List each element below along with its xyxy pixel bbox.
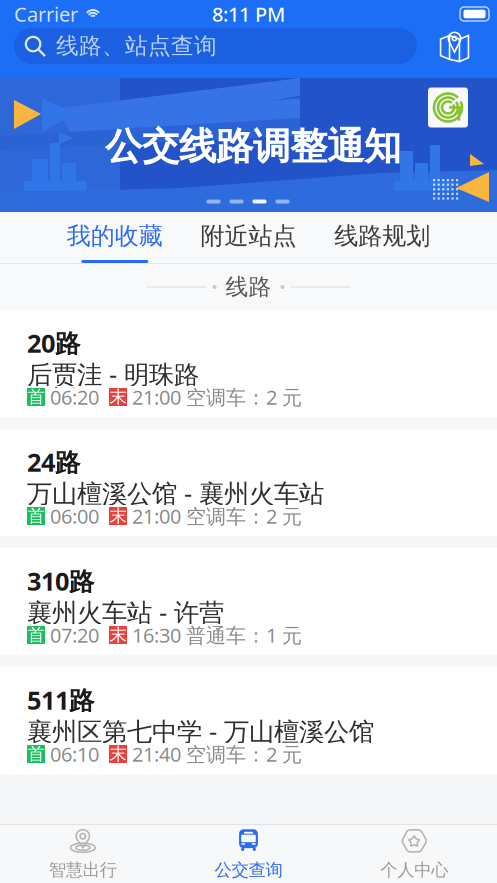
staticText: 首 xyxy=(27,505,44,527)
staticText: 末 xyxy=(109,743,126,765)
button[interactable]: 线路规划 xyxy=(315,212,449,263)
staticText: 公交查询 xyxy=(214,859,282,881)
staticText: 智慧出行 xyxy=(49,859,117,881)
button[interactable]: 511路 xyxy=(0,667,497,774)
staticText: 06:20 xyxy=(45,384,109,410)
staticText: 襄州区第七中学 - 万山檀溪公馆 xyxy=(27,714,374,748)
button[interactable]: 公交线路调整通知 xyxy=(0,78,497,212)
staticText: 24路 xyxy=(27,445,80,479)
staticText: 首 xyxy=(27,624,44,646)
staticText: 个人中心 xyxy=(380,859,448,881)
staticText: 末 xyxy=(109,386,126,408)
button[interactable]: 个人中心 xyxy=(331,825,497,883)
button[interactable]: 我的收藏 xyxy=(48,212,182,263)
button[interactable]: 附近站点 xyxy=(182,212,315,263)
staticText: 首 xyxy=(27,743,44,765)
staticText: 末 xyxy=(109,624,126,646)
button[interactable]: 智慧出行 xyxy=(0,825,166,883)
staticText: 8:11 PM xyxy=(212,1,285,27)
staticText: 末 xyxy=(109,505,126,527)
staticText: 07:20 xyxy=(45,622,109,648)
staticText: 附近站点 xyxy=(200,221,296,251)
staticText: 公交线路调整通知 xyxy=(105,124,401,169)
button[interactable]: 公交查询 xyxy=(166,825,331,883)
staticText: 06:10 xyxy=(45,741,109,767)
staticText: 310路 xyxy=(27,564,94,598)
staticText: 后贾洼 - 明珠路 xyxy=(27,357,199,391)
button[interactable]: 线路、站点查询 xyxy=(14,28,417,64)
staticText: Carrier xyxy=(14,1,78,27)
staticText: 襄州火车站 - 许营 xyxy=(27,595,224,629)
staticText: 511路 xyxy=(27,683,94,717)
staticText: 线路 xyxy=(225,273,271,301)
staticText: 线路规划 xyxy=(334,221,430,251)
staticText: 线路、站点查询 xyxy=(56,32,217,60)
button[interactable]: 24路 xyxy=(0,429,497,536)
staticText: 我的收藏 xyxy=(67,221,163,251)
button[interactable]: 20路 xyxy=(0,310,497,417)
staticText: 20路 xyxy=(27,326,80,360)
staticText: 16:30 普通车：1 元 xyxy=(127,622,302,648)
staticText: 首 xyxy=(27,386,44,408)
staticText: 21:00 空调车：2 元 xyxy=(127,503,302,529)
staticText: 万山檀溪公馆 - 襄州火车站 xyxy=(27,476,324,510)
button[interactable]: Map xyxy=(439,30,470,61)
staticText: 21:00 空调车：2 元 xyxy=(127,384,302,410)
staticText: 06:00 xyxy=(45,503,109,529)
button[interactable]: 310路 xyxy=(0,548,497,655)
staticText: 21:40 空调车：2 元 xyxy=(127,741,302,767)
